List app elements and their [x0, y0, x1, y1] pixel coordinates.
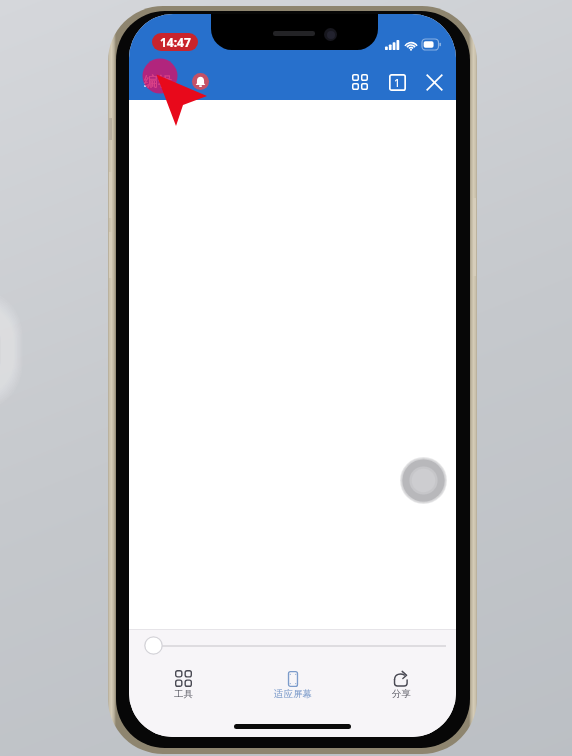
- button[interactable]: Zoom level: [144, 636, 163, 655]
- button[interactable]: Grid view: [344, 66, 376, 98]
- button[interactable]: 适应屏幕: [238, 661, 347, 709]
- button[interactable]: Pages: [381, 66, 413, 98]
- staticText: 1: [394, 75, 401, 90]
- staticText: 分享: [392, 688, 411, 700]
- staticText: 14:47: [160, 34, 191, 50]
- button[interactable]: Close: [418, 66, 450, 98]
- button[interactable]: Assistive touch: [400, 457, 447, 504]
- staticText: 适应屏幕: [274, 688, 312, 700]
- button[interactable]: 编辑: [140, 67, 176, 97]
- button[interactable]: 工具: [129, 661, 238, 709]
- staticText: 工具: [174, 688, 193, 700]
- button[interactable]: Notifications: [186, 67, 215, 96]
- button[interactable]: 分享: [347, 661, 456, 709]
- staticText: 编辑: [144, 73, 172, 91]
